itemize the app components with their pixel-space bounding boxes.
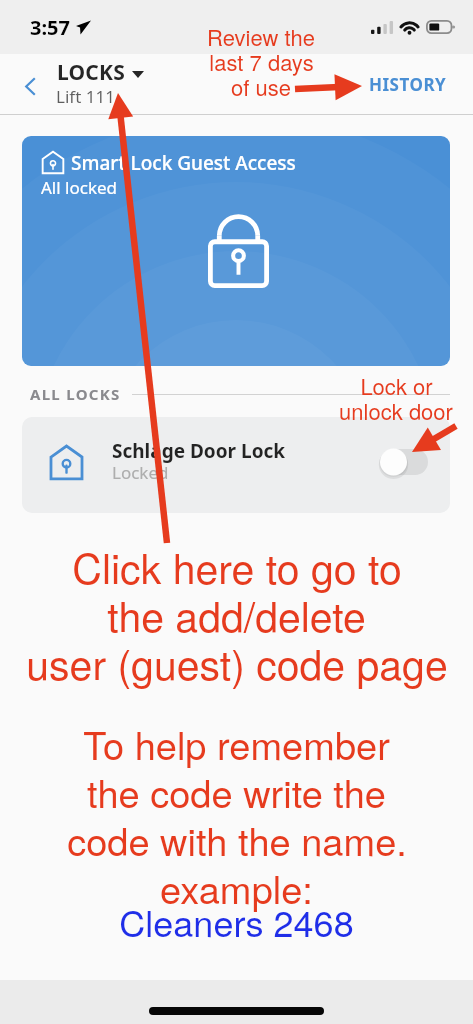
staticText: Click here to go to (72, 537, 402, 596)
staticText: Review the (207, 21, 315, 53)
staticText: last 7 days (209, 46, 314, 78)
staticText: unlock door (339, 395, 453, 427)
staticText: Lock or (360, 370, 433, 402)
staticText: code with the name. (67, 812, 407, 866)
button[interactable]: Schlage Door Lock (22, 417, 450, 513)
staticText: Locked (112, 461, 169, 484)
staticText: 3:57 (30, 14, 70, 41)
staticText: user (guest) code page (26, 633, 448, 692)
staticText: of use (231, 71, 291, 103)
staticText: Lift 111 (56, 85, 115, 108)
staticText: HISTORY (369, 73, 447, 96)
button[interactable]: Back (10, 54, 54, 114)
staticText: Smart Lock Guest Access (71, 150, 296, 176)
staticText: To help remember (83, 716, 390, 770)
staticText: the add/delete (107, 585, 366, 644)
staticText: ALL LOCKS (30, 384, 121, 404)
button[interactable]: Smart Lock Guest Access (22, 136, 450, 366)
button[interactable]: Lock or unlock door (377, 444, 433, 480)
staticText: the code write the (87, 764, 386, 818)
staticText: LOCKS (57, 58, 125, 87)
staticText: All locked (41, 176, 118, 199)
staticText: example: (160, 860, 313, 914)
staticText: Cleaners 2468 (119, 896, 354, 948)
button[interactable]: HISTORY (369, 73, 447, 96)
staticText: Schlage Door Lock (112, 438, 286, 464)
